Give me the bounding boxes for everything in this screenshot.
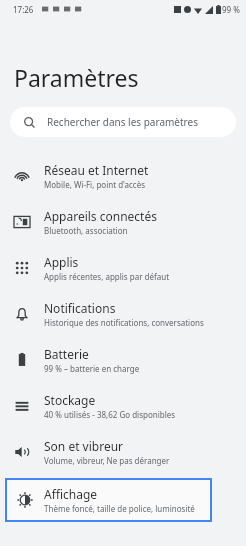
staticText: Réseau et Internet (44, 162, 149, 178)
button[interactable]: Appareils connectés (0, 199, 246, 245)
staticText: Bluetooth, association (44, 225, 128, 236)
staticText: Batterie (44, 346, 89, 362)
button[interactable]: Rechercher dans les paramètres (10, 107, 236, 137)
button[interactable]: Son et vibreur (0, 429, 246, 475)
button[interactable]: Réseau et Internet (0, 153, 246, 199)
staticText: 17:26 (13, 4, 34, 15)
staticText: Rechercher dans les paramètres (47, 115, 198, 129)
staticText: Volume, vibreur, Ne pas déranger (44, 455, 170, 466)
staticText: 40 % utilisés - 38,62 Go disponibles (44, 409, 176, 420)
staticText: Appareils connectés (44, 208, 157, 224)
staticText: Historique des notifications, conversati… (44, 317, 204, 328)
staticText: Mobile, Wi-Fi, point d'accès (44, 179, 146, 190)
button[interactable]: Notifications (0, 291, 246, 337)
staticText: Affichage (44, 486, 98, 502)
staticText: Son et vibreur (44, 438, 124, 454)
staticText: Applis (44, 254, 79, 270)
staticText: Stockage (44, 392, 96, 408)
staticText: 99 % (222, 4, 240, 15)
staticText: Paramètres (14, 62, 139, 93)
staticText: Thème foncé, taille de police, luminosit… (44, 503, 195, 514)
button[interactable]: Affichage (5, 478, 212, 522)
button[interactable]: Applis (0, 245, 246, 291)
button[interactable]: Batterie (0, 337, 246, 383)
staticText: Applis récentes, applis par défaut (44, 271, 170, 282)
button[interactable]: Stockage (0, 383, 246, 429)
staticText: 99 % – batterie en charge (44, 363, 140, 374)
staticText: Notifications (44, 300, 116, 316)
